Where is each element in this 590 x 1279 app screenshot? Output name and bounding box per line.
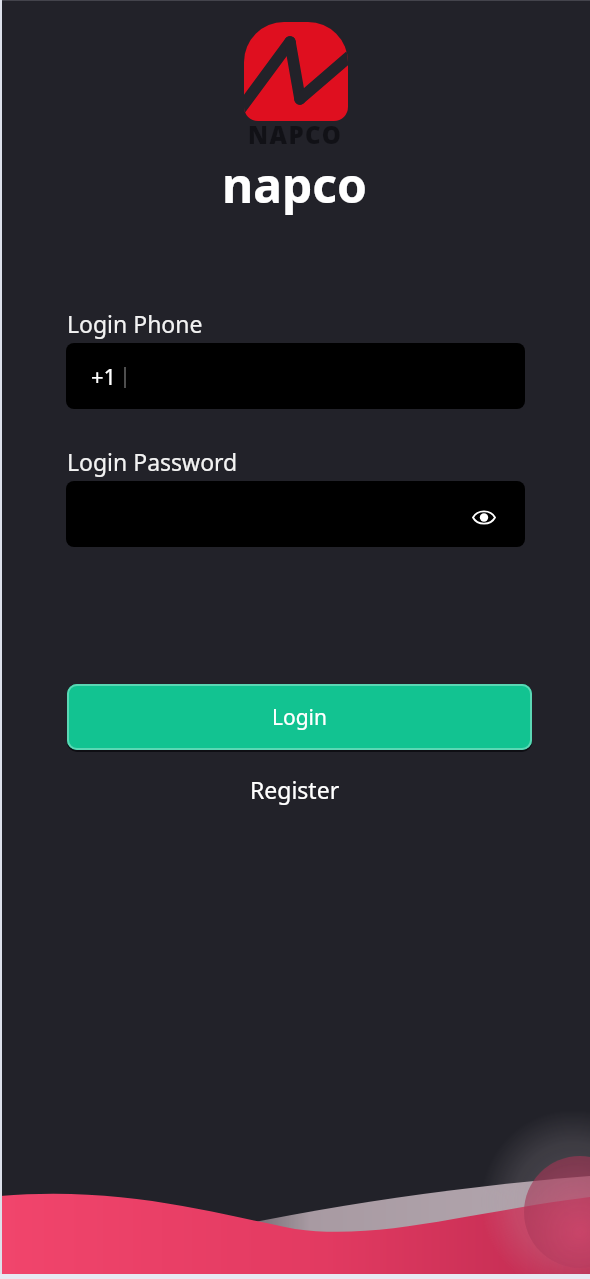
button[interactable] [472,509,496,526]
staticText: Login [272,703,328,732]
button[interactable]: Login [67,684,532,750]
staticText: Login Password [67,446,238,477]
button[interactable]: Register [250,774,340,805]
staticText: +1 [91,361,117,391]
staticText: NAPCO [248,118,343,151]
staticText: napco [222,152,368,217]
button[interactable]: +1 [66,343,525,409]
staticText: Login Phone [67,308,203,339]
button[interactable] [66,481,525,547]
